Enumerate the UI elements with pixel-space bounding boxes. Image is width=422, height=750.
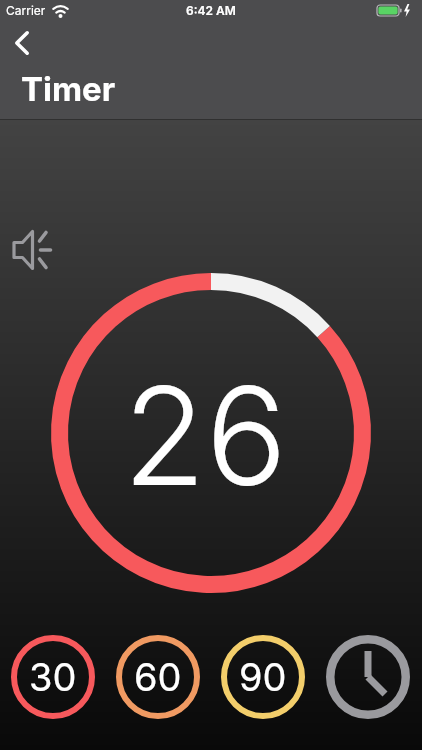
- button[interactable]: 90: [221, 635, 305, 719]
- button[interactable]: [2, 24, 42, 62]
- button[interactable]: 30: [11, 635, 95, 719]
- button[interactable]: 60: [116, 635, 200, 719]
- staticText: 60: [134, 654, 182, 700]
- button[interactable]: [326, 635, 410, 719]
- staticText: 26: [123, 354, 288, 517]
- staticText: 6:42 AM: [186, 3, 236, 18]
- staticText: 90: [239, 654, 287, 700]
- button[interactable]: [6, 222, 60, 278]
- staticText: Timer: [21, 69, 116, 109]
- button[interactable]: 26: [45, 275, 365, 595]
- staticText: Carrier: [6, 3, 46, 18]
- staticText: 30: [29, 654, 77, 700]
